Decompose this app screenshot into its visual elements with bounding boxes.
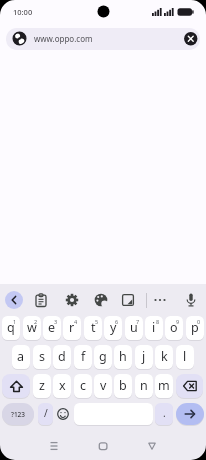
staticText: q xyxy=(7,319,15,336)
staticText: 1 xyxy=(13,318,17,325)
staticText: y xyxy=(110,319,117,336)
button[interactable] xyxy=(46,438,62,454)
staticText: f xyxy=(81,348,86,365)
button[interactable]: q xyxy=(2,316,20,340)
button[interactable] xyxy=(95,438,111,454)
staticText: 9 xyxy=(176,318,180,325)
button[interactable]: y xyxy=(104,316,122,340)
staticText: b xyxy=(119,377,127,394)
staticText: 5 xyxy=(95,318,99,325)
button[interactable]: b xyxy=(114,374,132,398)
button[interactable]: u xyxy=(125,316,143,340)
staticText: / xyxy=(44,406,48,420)
button[interactable]: / xyxy=(38,403,53,425)
button[interactable] xyxy=(55,406,71,422)
button[interactable]: m xyxy=(155,374,173,398)
staticText: l xyxy=(183,348,187,365)
button[interactable] xyxy=(5,291,23,309)
button[interactable]: j xyxy=(135,345,153,369)
staticText: t xyxy=(91,319,96,336)
button[interactable]: d xyxy=(53,345,71,369)
staticText: h xyxy=(119,348,127,365)
button[interactable]: i xyxy=(145,316,163,340)
staticText: i xyxy=(152,319,156,336)
button[interactable]: h xyxy=(114,345,132,369)
staticText: . xyxy=(163,406,166,420)
staticText: 6 xyxy=(115,318,119,325)
staticText: 4 xyxy=(74,318,78,325)
button[interactable]: o xyxy=(165,316,183,340)
button[interactable]: r xyxy=(63,316,81,340)
button[interactable]: v xyxy=(94,374,112,398)
staticText: c xyxy=(80,377,87,394)
button[interactable]: t xyxy=(84,316,102,340)
staticText: j xyxy=(142,348,146,365)
button[interactable]: a xyxy=(12,345,30,369)
staticText: 3 xyxy=(54,318,58,325)
button[interactable]: f xyxy=(74,345,92,369)
button[interactable] xyxy=(91,290,111,310)
button[interactable]: w xyxy=(23,316,41,340)
staticText: p xyxy=(191,319,199,336)
staticText: g xyxy=(99,348,107,365)
button[interactable]: l xyxy=(176,345,194,369)
staticText: e xyxy=(48,319,56,336)
staticText: o xyxy=(170,319,178,336)
staticText: m xyxy=(158,377,170,394)
staticText: 0 xyxy=(197,318,201,325)
staticText: x xyxy=(59,377,66,394)
staticText: 8 xyxy=(156,318,160,325)
staticText: w xyxy=(27,319,37,336)
staticText: d xyxy=(58,348,66,365)
staticText: k xyxy=(161,348,168,365)
button[interactable]: p xyxy=(186,316,204,340)
button[interactable] xyxy=(2,374,30,398)
button[interactable]: e xyxy=(43,316,61,340)
staticText: a xyxy=(17,348,25,365)
staticText: 2 xyxy=(34,318,38,325)
button[interactable]: k xyxy=(155,345,173,369)
button[interactable]: z xyxy=(33,374,51,398)
staticText: r xyxy=(69,319,75,336)
staticText: n xyxy=(140,377,148,394)
button[interactable]: www.oppo.com xyxy=(6,28,200,50)
button[interactable] xyxy=(150,290,170,310)
button[interactable] xyxy=(176,374,203,398)
button[interactable]: n xyxy=(135,374,153,398)
button[interactable] xyxy=(144,438,160,454)
button[interactable] xyxy=(184,32,198,46)
button[interactable]: s xyxy=(33,345,51,369)
staticText: ?123 xyxy=(11,410,26,419)
button[interactable] xyxy=(176,403,204,425)
staticText: s xyxy=(39,348,45,365)
button[interactable]: . xyxy=(155,403,173,425)
button[interactable]: g xyxy=(94,345,112,369)
button[interactable]: ?123 xyxy=(2,403,34,425)
staticText: 10:00 xyxy=(13,7,33,17)
staticText: v xyxy=(100,377,107,394)
staticText: z xyxy=(39,377,45,394)
staticText: u xyxy=(130,319,138,336)
button[interactable] xyxy=(31,290,51,310)
button[interactable] xyxy=(181,290,201,310)
staticText: www.oppo.com xyxy=(34,33,93,44)
button[interactable]: c xyxy=(74,374,92,398)
button[interactable]: x xyxy=(53,374,71,398)
staticText: 7 xyxy=(136,318,140,325)
button[interactable] xyxy=(62,290,82,310)
button[interactable] xyxy=(118,290,138,310)
